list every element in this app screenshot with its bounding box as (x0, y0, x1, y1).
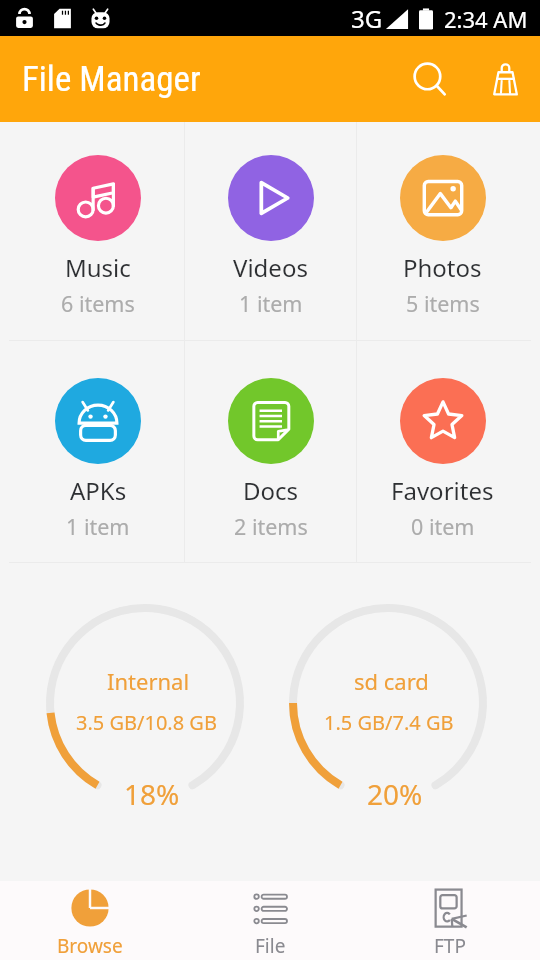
button[interactable]: Favorites (357, 341, 528, 562)
button[interactable]: sd card (289, 604, 487, 802)
staticText: Internal (107, 666, 190, 696)
staticText: Favorites (391, 474, 494, 507)
button[interactable]: FTP (360, 881, 540, 960)
staticText: 3.5 GB/10.8 GB (76, 709, 217, 736)
button[interactable]: Browse (0, 881, 180, 960)
staticText: Docs (243, 474, 299, 507)
staticText: 1.5 GB/7.4 GB (324, 709, 454, 736)
button[interactable]: Internal (46, 604, 244, 802)
staticText: 1 item (66, 512, 130, 541)
button[interactable]: Clean (476, 50, 534, 108)
staticText: 2 items (234, 512, 308, 541)
button[interactable]: Search (401, 50, 459, 108)
staticText: Photos (403, 251, 482, 284)
staticText: File (255, 933, 286, 959)
staticText: sd card (354, 666, 429, 696)
staticText: 18% (124, 775, 180, 813)
staticText: 3G (351, 2, 383, 35)
staticText: FTP (434, 933, 466, 959)
staticText: APKs (70, 474, 127, 507)
staticText: 6 items (61, 289, 135, 318)
button[interactable]: Music (12, 122, 184, 340)
staticText: File Manager (22, 59, 201, 100)
button[interactable]: Docs (185, 341, 356, 562)
button[interactable]: Photos (357, 122, 528, 340)
staticText: 0 item (411, 512, 475, 541)
button[interactable]: Videos (185, 122, 356, 340)
staticText: 2:34 AM (444, 4, 528, 34)
staticText: Browse (57, 933, 123, 959)
staticText: Music (65, 251, 131, 284)
button[interactable]: APKs (12, 341, 184, 562)
staticText: Videos (233, 251, 308, 284)
staticText: 5 items (406, 289, 480, 318)
staticText: 1 item (239, 289, 303, 318)
button[interactable]: File (180, 881, 360, 960)
staticText: 20% (367, 775, 423, 813)
